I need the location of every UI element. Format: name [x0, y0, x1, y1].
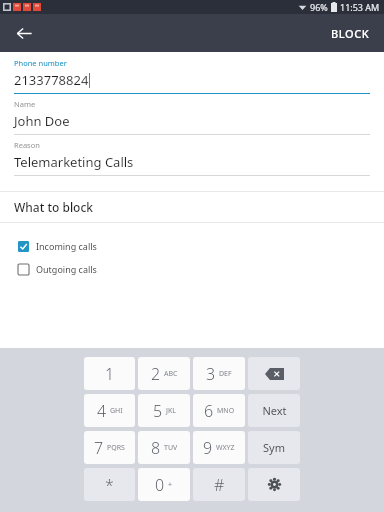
button[interactable]: 5	[138, 394, 190, 427]
button[interactable]: 3	[193, 357, 245, 390]
staticText: 9	[203, 437, 213, 459]
staticText: JKL	[166, 406, 176, 416]
staticText: 2133778824	[14, 71, 89, 89]
staticText: *	[105, 474, 114, 496]
staticText: 1	[105, 363, 115, 385]
staticText: What to block	[14, 199, 94, 215]
staticText: Next	[262, 403, 287, 418]
staticText: Sym	[263, 440, 285, 455]
button[interactable]: Phone number	[0, 58, 384, 99]
staticText: Reason	[14, 140, 40, 150]
button[interactable]: 9	[193, 431, 245, 464]
staticText: DEF	[219, 369, 232, 379]
staticText: 0	[155, 474, 165, 496]
button[interactable]: Outgoing calls	[0, 260, 384, 278]
staticText: John Doe	[14, 112, 70, 130]
staticText: PQRS	[107, 443, 125, 453]
button[interactable]: Reason	[0, 140, 384, 181]
button[interactable]: Delete	[248, 357, 300, 390]
staticText: MNO	[217, 406, 235, 416]
button[interactable]: *	[84, 468, 135, 501]
button[interactable]: Keyboard settings	[248, 468, 300, 501]
button[interactable]: Back	[8, 17, 40, 49]
staticText: 11:53 AM	[340, 1, 380, 13]
button[interactable]: 2	[138, 357, 190, 390]
button[interactable]: 0	[138, 468, 190, 501]
staticText: ABC	[164, 369, 178, 379]
button[interactable]: BLOCK	[317, 18, 384, 49]
staticText: Telemarketing Calls	[14, 153, 134, 171]
staticText: GHI	[110, 406, 123, 416]
staticText: 96%	[310, 1, 328, 13]
staticText: #	[214, 474, 225, 496]
button[interactable]: 4	[84, 394, 135, 427]
staticText: 2	[151, 363, 161, 385]
staticText: 4	[97, 400, 107, 422]
button[interactable]: Incoming calls	[0, 237, 384, 255]
staticText: Incoming calls	[36, 240, 97, 252]
button[interactable]: 6	[193, 394, 245, 427]
staticText: Name	[14, 99, 36, 109]
button[interactable]: 8	[138, 431, 190, 464]
button[interactable]: 7	[84, 431, 135, 464]
button[interactable]: #	[193, 468, 245, 501]
staticText: 7	[94, 437, 104, 459]
staticText: 6	[204, 400, 214, 422]
staticText: 5	[153, 400, 163, 422]
staticText: Phone number	[14, 58, 67, 68]
button[interactable]: Sym	[248, 431, 300, 464]
staticText: 8	[151, 437, 161, 459]
staticText: BLOCK	[331, 26, 370, 41]
button[interactable]: Next	[248, 394, 300, 427]
button[interactable]: Name	[0, 99, 384, 140]
staticText: 3	[206, 363, 216, 385]
staticText: WXYZ	[216, 443, 235, 453]
button[interactable]: 1	[84, 357, 135, 390]
staticText: TUV	[164, 443, 178, 453]
staticText: +	[168, 480, 173, 490]
staticText: Outgoing calls	[36, 263, 97, 275]
